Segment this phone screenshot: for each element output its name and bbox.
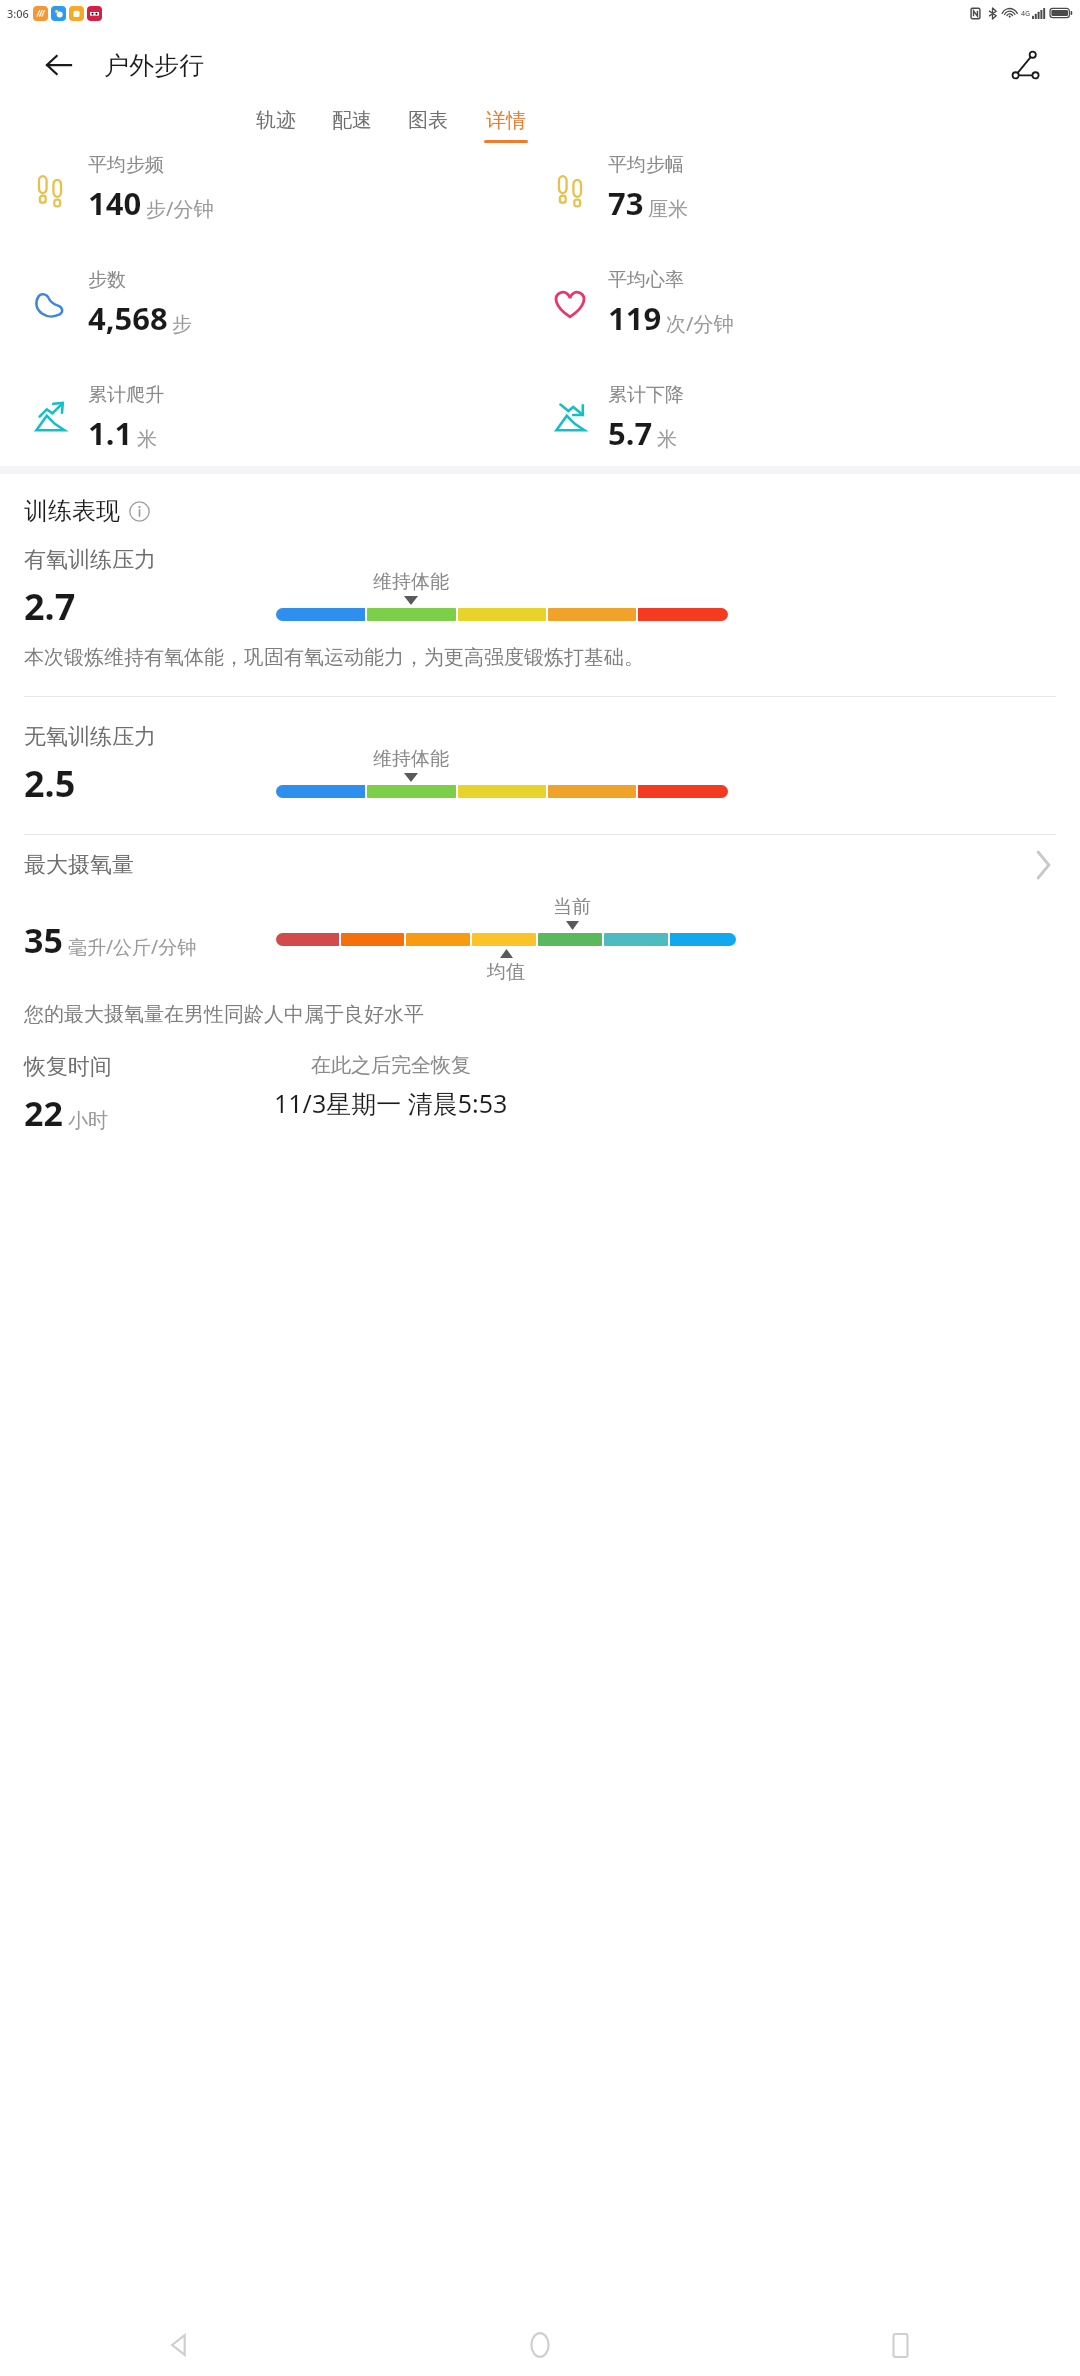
staticText: 1.1	[88, 412, 133, 454]
staticText: 119	[608, 297, 662, 339]
button[interactable]: 最大摄氧量	[0, 851, 1080, 879]
button[interactable]: 训练表现	[24, 496, 150, 526]
staticText: 毫升/公斤/分钟	[68, 934, 197, 960]
staticText: 22	[24, 1090, 63, 1136]
staticText: 步	[172, 312, 192, 337]
button[interactable]: 配速	[328, 104, 376, 147]
staticText: 平均心率	[608, 268, 684, 292]
staticText: 户外步行	[104, 50, 204, 81]
staticText: 平均步幅	[608, 153, 684, 177]
staticText: 4G	[1021, 9, 1031, 19]
button[interactable]: 平均心率	[544, 268, 1080, 339]
staticText: 4,568	[88, 297, 168, 339]
staticText: 当前	[553, 895, 591, 919]
staticText: 步/分钟	[146, 195, 214, 222]
staticText: 米	[657, 427, 677, 452]
button[interactable]: 平均步幅	[544, 153, 1080, 224]
button[interactable]: 图表	[404, 104, 452, 147]
staticText: 累计爬升	[88, 383, 164, 407]
staticText: 在此之后完全恢复	[311, 1053, 471, 1078]
staticText: 维持体能	[373, 747, 449, 771]
staticText: 小时	[68, 1108, 108, 1133]
staticText: 训练表现	[24, 496, 120, 526]
staticText: 140	[88, 182, 142, 224]
staticText: 2.5	[24, 759, 76, 808]
staticText: 2.7	[24, 582, 76, 631]
button[interactable]: 步数	[24, 268, 540, 339]
staticText: 均值	[487, 960, 525, 984]
staticText: 本次锻炼维持有氧体能，巩固有氧运动能力，为更高强度锻炼打基础。	[24, 645, 1056, 670]
staticText: 厘米	[648, 197, 688, 222]
button[interactable]: Share	[1002, 41, 1050, 89]
button[interactable]: 轨迹	[252, 104, 300, 147]
staticText: 最大摄氧量	[24, 851, 134, 879]
button[interactable]: 累计爬升	[24, 383, 540, 454]
staticText: 5.7	[608, 412, 653, 454]
staticText: 图表	[408, 108, 448, 133]
staticText: 3:06	[7, 6, 29, 21]
button[interactable]: Back	[0, 2314, 360, 2376]
staticText: 维持体能	[373, 570, 449, 594]
button[interactable]: Back	[36, 42, 82, 88]
staticText: 有氧训练压力	[24, 546, 156, 574]
staticText: 次/分钟	[666, 310, 734, 337]
staticText: 73	[608, 182, 644, 224]
staticText: 35	[24, 917, 63, 963]
staticText: 轨迹	[256, 108, 296, 133]
staticText: 步数	[88, 268, 126, 292]
staticText: 详情	[486, 108, 526, 133]
button[interactable]: Recents	[720, 2314, 1080, 2376]
button[interactable]: 累计下降	[544, 383, 1080, 454]
staticText: 配速	[332, 108, 372, 133]
button[interactable]: 详情	[480, 104, 532, 147]
staticText: 无氧训练压力	[24, 723, 156, 751]
staticText: 累计下降	[608, 383, 684, 407]
staticText: 平均步频	[88, 153, 164, 177]
staticText: 恢复时间	[24, 1053, 112, 1081]
staticText: 您的最大摄氧量在男性同龄人中属于良好水平	[24, 1002, 424, 1027]
staticText: 11/3星期一 清晨5:53	[274, 1086, 508, 1120]
staticText: 米	[137, 427, 157, 452]
button[interactable]: Home	[360, 2314, 720, 2376]
button[interactable]: 平均步频	[24, 153, 540, 224]
